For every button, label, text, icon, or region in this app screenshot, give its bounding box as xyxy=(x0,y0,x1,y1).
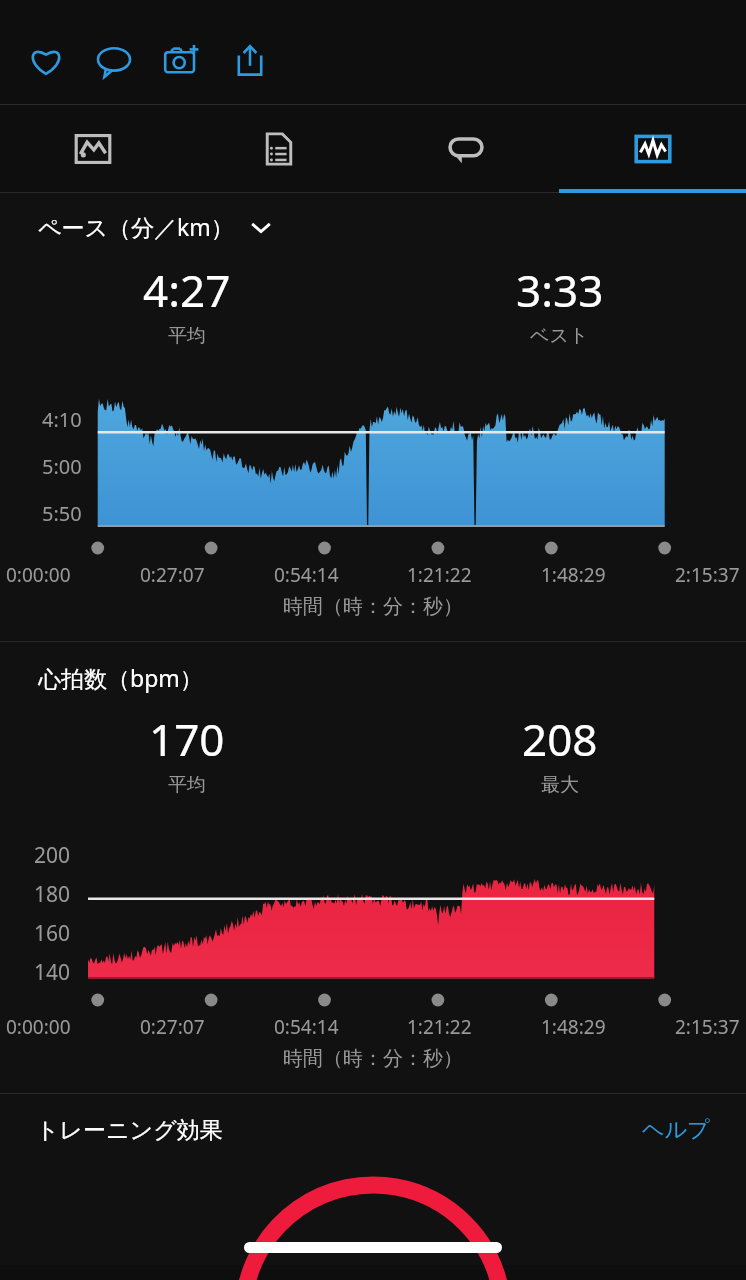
button[interactable]: Map xyxy=(0,105,186,193)
staticText: 2:15:37 xyxy=(675,562,740,588)
staticText: 180 xyxy=(34,880,71,909)
staticText: 最大 xyxy=(541,773,579,797)
staticText: 1:48:29 xyxy=(541,1014,606,1040)
staticText: ヘルプ xyxy=(642,1116,710,1144)
staticText: 0:54:14 xyxy=(274,562,339,588)
button[interactable]: ペース（分／km） xyxy=(38,211,746,242)
staticText: 0:27:07 xyxy=(140,562,205,588)
staticText: 4:27 xyxy=(143,260,231,320)
staticText: 平均 xyxy=(168,324,206,348)
button[interactable]: Comment xyxy=(86,33,142,89)
staticText: 200 xyxy=(34,841,71,870)
staticText: 5:00 xyxy=(42,453,82,480)
staticText: 140 xyxy=(34,958,71,986)
staticText: 平均 xyxy=(168,773,206,797)
button[interactable]: Details xyxy=(186,105,372,193)
staticText: トレーニング効果 xyxy=(36,1116,223,1145)
staticText: 心拍数（bpm） xyxy=(38,662,203,693)
staticText: ペース（分／km） xyxy=(38,211,234,242)
staticText: 1:21:22 xyxy=(407,562,472,588)
staticText: 160 xyxy=(34,919,71,948)
staticText: 0:00:00 xyxy=(6,1014,71,1040)
staticText: 0:54:14 xyxy=(274,1014,339,1040)
staticText: 時間（時：分：秒） xyxy=(0,594,746,619)
staticText: 0:27:07 xyxy=(140,1014,205,1040)
staticText: 208 xyxy=(522,709,598,769)
button[interactable]: Like xyxy=(18,33,74,89)
staticText: 0:00:00 xyxy=(6,562,71,588)
staticText: 時間（時：分：秒） xyxy=(0,1046,746,1071)
staticText: 4:10 xyxy=(42,406,82,433)
button[interactable]: Laps xyxy=(372,105,559,193)
staticText: 2:15:37 xyxy=(675,1014,740,1040)
button[interactable]: Share xyxy=(222,33,278,89)
staticText: 1:48:29 xyxy=(541,562,606,588)
button[interactable]: Charts xyxy=(559,105,746,193)
staticText: 1:21:22 xyxy=(407,1014,472,1040)
staticText: 3:33 xyxy=(516,260,604,320)
staticText: ベスト xyxy=(530,324,589,348)
staticText: 5:50 xyxy=(42,500,82,527)
button[interactable]: ヘルプ xyxy=(642,1116,710,1144)
button[interactable]: Add photo xyxy=(154,33,210,89)
staticText: 170 xyxy=(149,709,225,769)
